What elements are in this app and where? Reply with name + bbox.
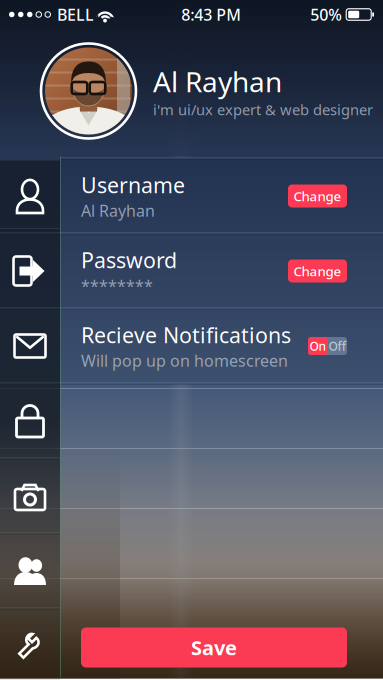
staticText: ******** <box>81 275 153 296</box>
staticText: Al Rayhan <box>81 200 155 221</box>
staticText: On <box>309 338 326 354</box>
button[interactable]: Recieve Notifications <box>60 309 383 382</box>
staticText: Off <box>328 338 346 354</box>
staticText: Save <box>191 634 237 661</box>
staticText: Change <box>293 262 341 280</box>
staticText: Change <box>293 187 341 205</box>
staticText: BELL <box>57 4 94 25</box>
staticText: 8:43 PM <box>181 4 241 25</box>
button[interactable]: Save <box>81 627 347 667</box>
button[interactable]: Log out <box>0 234 60 307</box>
staticText: Password <box>81 246 177 274</box>
button[interactable]: Change <box>288 184 347 207</box>
button[interactable]: Settings <box>0 609 60 680</box>
staticText: Username <box>81 171 185 199</box>
button[interactable]: Friends <box>0 534 60 607</box>
staticText: Recieve Notifications <box>81 321 291 349</box>
button[interactable]: Change <box>288 259 347 282</box>
staticText: 50% <box>310 4 342 25</box>
button[interactable]: Messages <box>0 309 60 382</box>
button[interactable]: Profile <box>0 159 60 232</box>
button[interactable]: Password <box>60 234 383 307</box>
staticText: i'm ui/ux expert & web designer <box>153 100 373 119</box>
button[interactable]: Photos <box>0 459 60 532</box>
button[interactable]: Username <box>60 159 383 232</box>
staticText: Will pop up on homescreen <box>81 350 288 371</box>
button[interactable]: On <box>308 337 347 355</box>
button[interactable]: Privacy <box>0 384 60 457</box>
staticText: Al Rayhan <box>153 63 282 100</box>
